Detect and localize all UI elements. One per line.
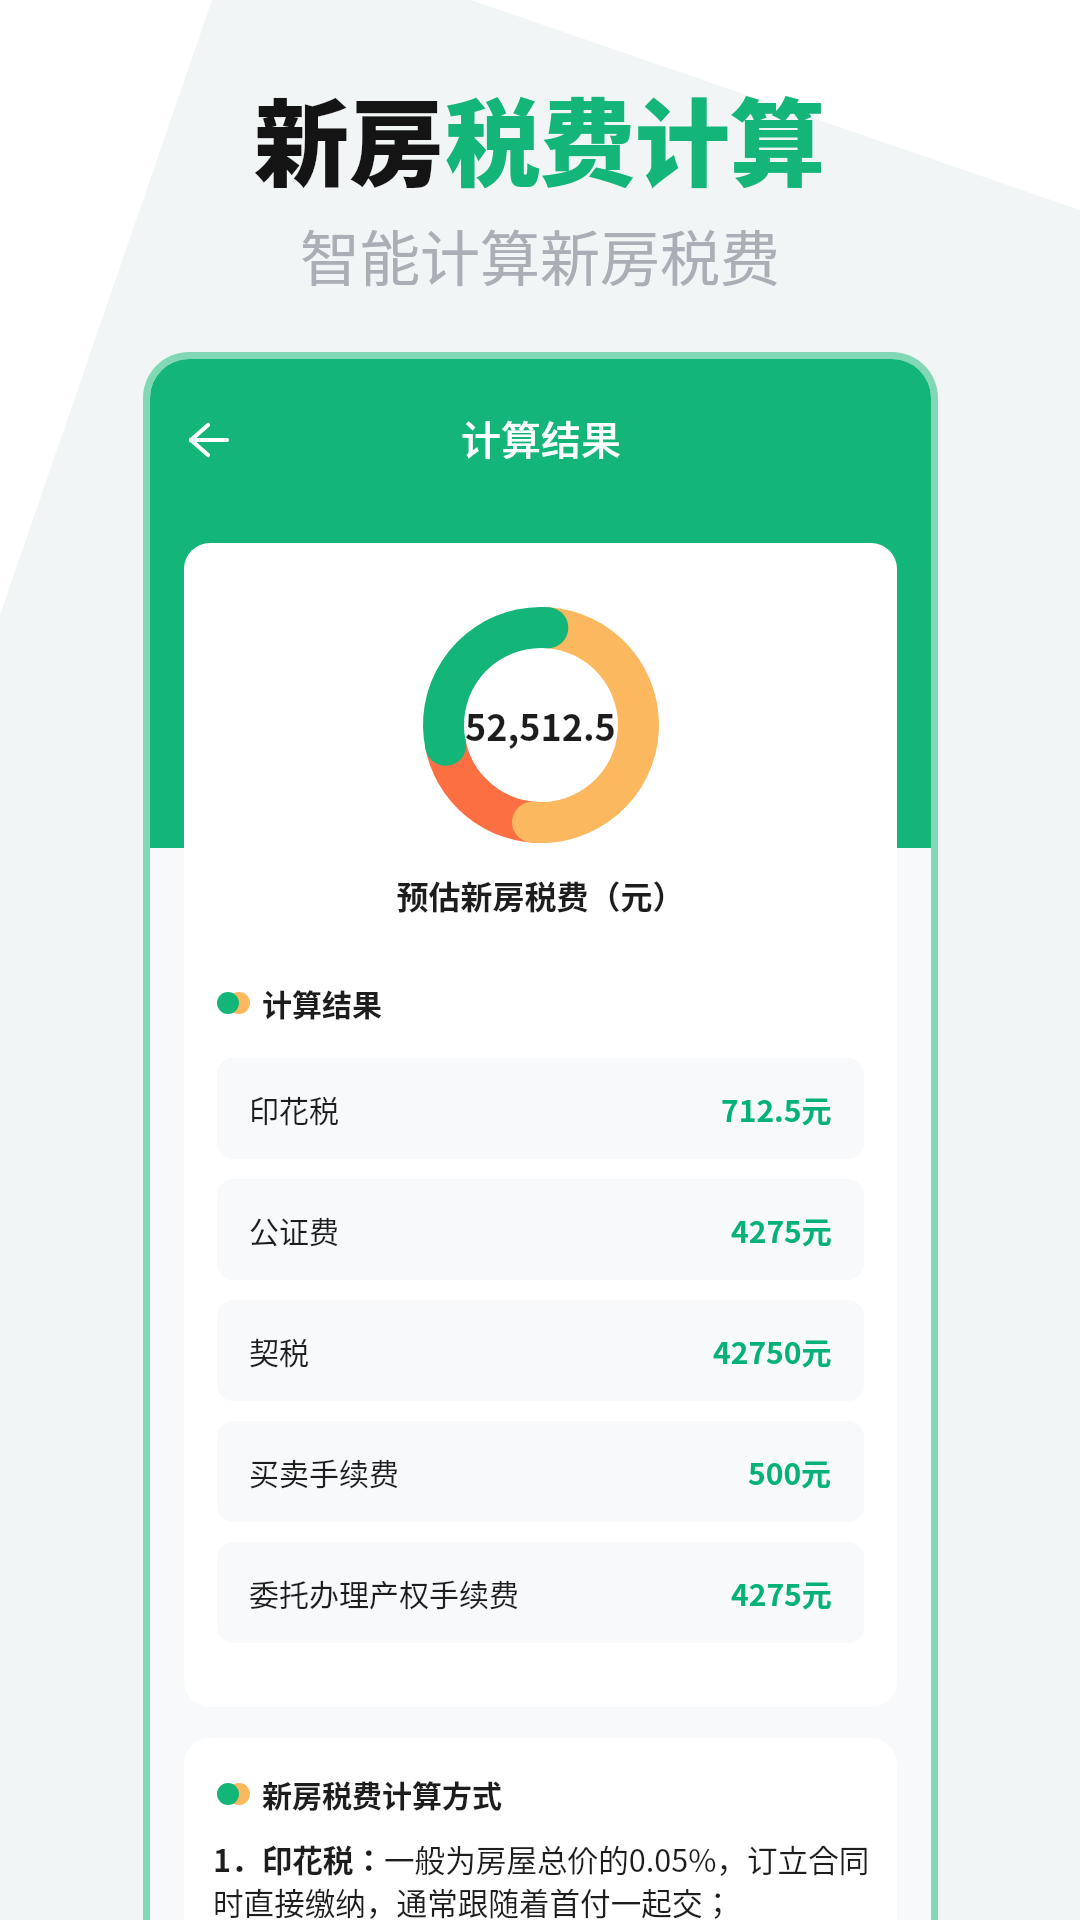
staticText: 预估新房税费（元） bbox=[396, 872, 685, 918]
staticText: 4275元 bbox=[731, 1571, 832, 1614]
button[interactable]: 买卖手续费 bbox=[217, 1421, 864, 1522]
staticText: 42750元 bbox=[713, 1329, 832, 1372]
button[interactable]: 印花税 bbox=[217, 1058, 864, 1159]
staticText: 4275元 bbox=[731, 1208, 832, 1251]
staticText: 税费计算 bbox=[445, 69, 826, 207]
staticText: 契税 bbox=[249, 1329, 309, 1372]
button[interactable]: 契税 bbox=[217, 1300, 864, 1401]
staticText: 新房 bbox=[254, 69, 445, 207]
staticText: 1．印花税：一般为房屋总价的0.05%，订立合同时直接缴纳，通常跟随着首付一起交… bbox=[213, 1837, 883, 1920]
staticText: 公证费 bbox=[249, 1208, 339, 1251]
staticText: 买卖手续费 bbox=[249, 1450, 399, 1493]
button[interactable]: 委托办理产权手续费 bbox=[217, 1542, 864, 1643]
staticText: 712.5元 bbox=[721, 1087, 832, 1130]
staticText: 计算结果 bbox=[262, 981, 382, 1024]
staticText: 智能计算新房税费 bbox=[300, 211, 780, 298]
button[interactable]: Back bbox=[171, 402, 247, 478]
staticText: 委托办理产权手续费 bbox=[249, 1571, 519, 1614]
staticText: 新房税费计算方式 bbox=[262, 1772, 502, 1815]
button[interactable]: 公证费 bbox=[217, 1179, 864, 1280]
staticText: 计算结果 bbox=[461, 409, 621, 467]
staticText: 500元 bbox=[748, 1450, 832, 1493]
staticText: 印花税 bbox=[249, 1087, 339, 1130]
staticText: 52,512.5 bbox=[465, 699, 616, 751]
